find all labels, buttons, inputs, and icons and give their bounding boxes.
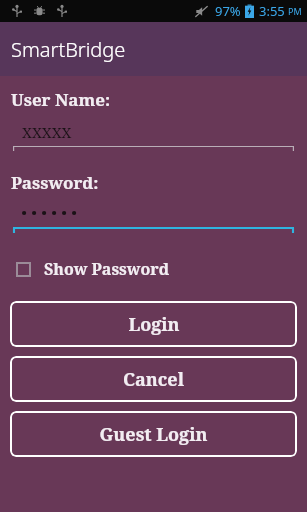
staticText: Password: (11, 171, 99, 194)
button[interactable]: Show Password (13, 255, 173, 283)
button[interactable] (13, 200, 294, 233)
staticText: 97% (215, 2, 241, 20)
staticText: Guest Login (99, 422, 208, 447)
staticText: PM (288, 5, 302, 17)
button[interactable]: Login (10, 301, 297, 347)
staticText: SmartBridge (11, 36, 126, 63)
staticText: 3:55 (259, 2, 285, 20)
button[interactable]: Guest Login (10, 411, 297, 457)
button[interactable]: Cancel (10, 356, 297, 402)
staticText: Show Password (44, 258, 170, 280)
staticText: Login (128, 312, 180, 337)
button[interactable]: XXXXX (13, 119, 294, 151)
staticText: User Name: (11, 88, 111, 111)
staticText: Cancel (123, 367, 184, 392)
staticText: XXXXX (22, 122, 72, 142)
